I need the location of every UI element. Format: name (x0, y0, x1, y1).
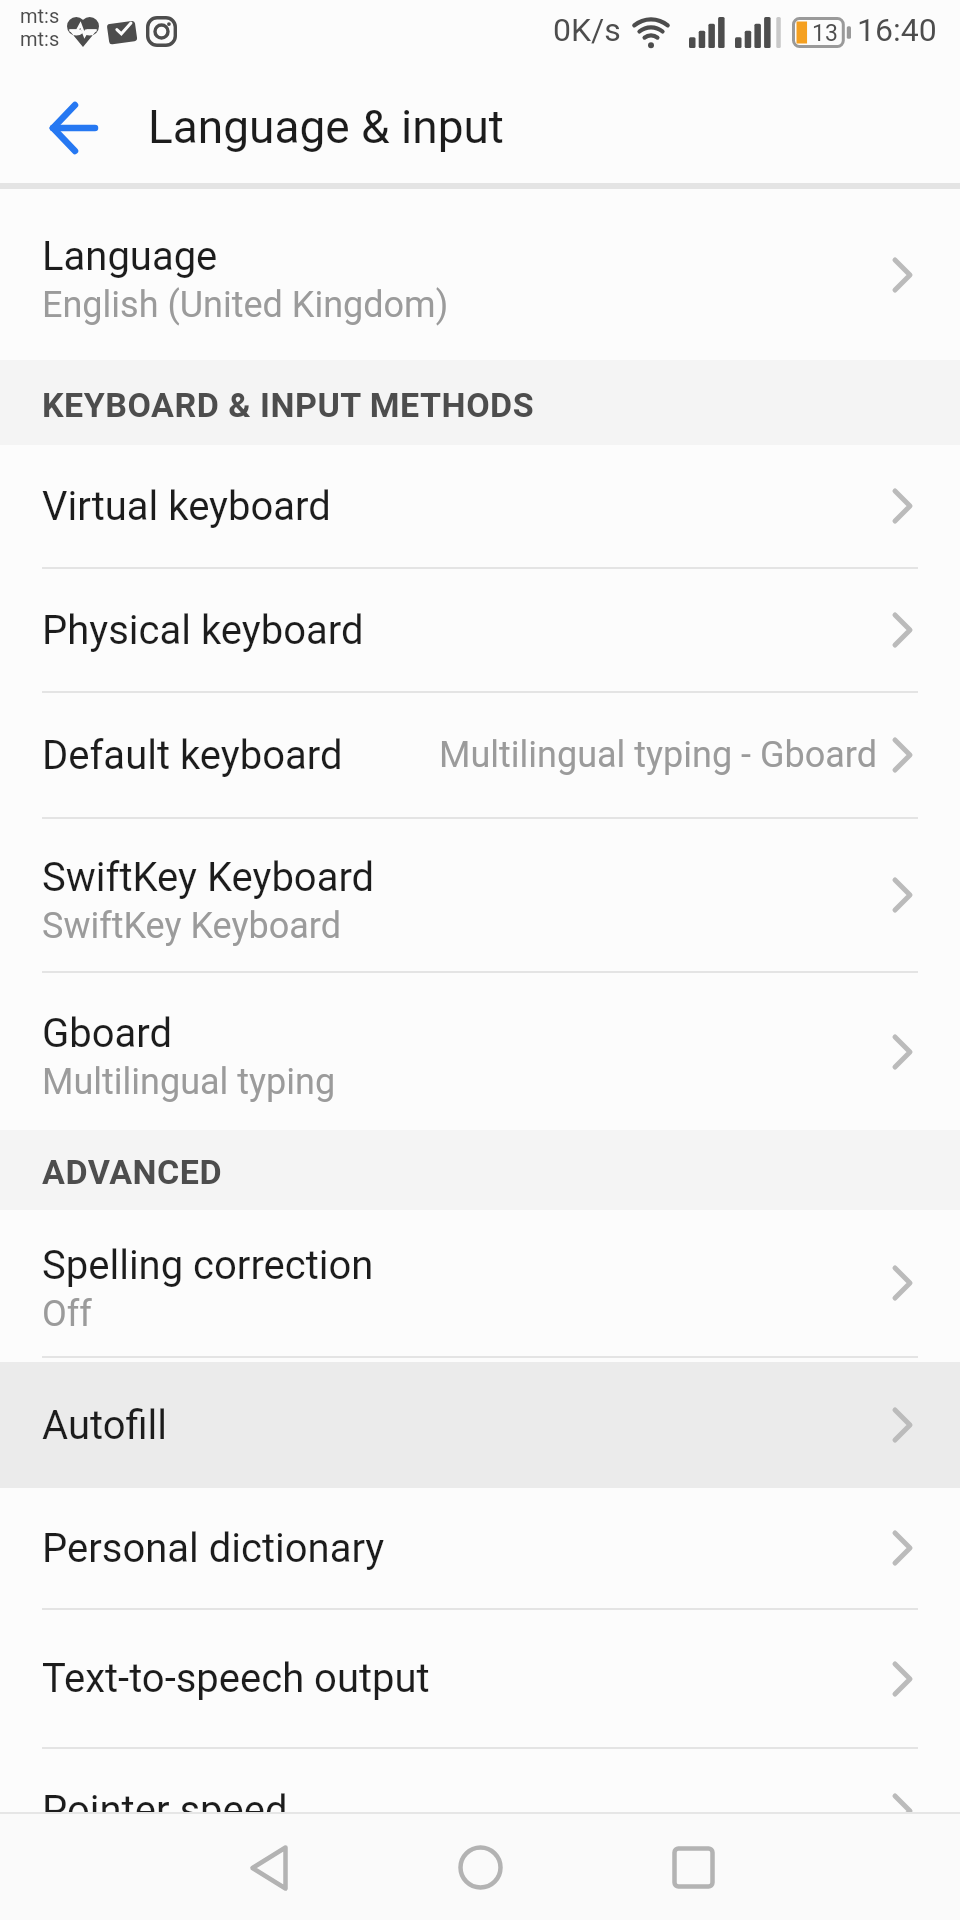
staticText: Text-to-speech output (42, 1655, 430, 1702)
staticText: mt:s (20, 27, 60, 50)
staticText: 16:40 (857, 11, 937, 49)
staticText: English (United Kingdom) (42, 284, 449, 326)
staticText: Virtual keyboard (42, 483, 331, 530)
staticText: 0K/s (553, 11, 621, 49)
button[interactable] (458, 1845, 503, 1890)
staticText: Spelling correction (42, 1242, 374, 1289)
staticText: Autofill (42, 1402, 168, 1449)
button[interactable]: Spelling correction (0, 1210, 960, 1356)
button[interactable] (672, 1846, 715, 1889)
button[interactable] (50, 104, 98, 152)
button[interactable]: Default keyboard (0, 693, 960, 817)
button[interactable]: Text-to-speech output (0, 1610, 960, 1747)
staticText: mt:s (20, 4, 60, 27)
staticText: Multilingual typing (42, 1061, 336, 1103)
button[interactable]: Pointer speed (0, 1749, 960, 1872)
staticText: ADVANCED (42, 1152, 223, 1192)
button[interactable]: Virtual keyboard (0, 445, 960, 567)
staticText: Multilingual typing - Gboard (439, 734, 877, 776)
staticText: Language & input (148, 100, 504, 154)
button[interactable]: Autofill (0, 1362, 960, 1488)
staticText: Pointer speed (42, 1787, 288, 1834)
staticText: Language (42, 233, 218, 280)
staticText: SwiftKey Keyboard (42, 854, 375, 901)
staticText: Physical keyboard (42, 607, 364, 654)
button[interactable] (250, 1845, 288, 1891)
staticText: Gboard (42, 1010, 173, 1057)
button[interactable]: SwiftKey Keyboard (0, 819, 960, 971)
staticText: Off (42, 1293, 92, 1335)
staticText: SwiftKey Keyboard (42, 905, 341, 947)
button[interactable]: Personal dictionary (0, 1488, 960, 1608)
staticText: 13 (812, 20, 838, 47)
button[interactable]: Physical keyboard (0, 569, 960, 691)
staticText: Default keyboard (42, 732, 343, 779)
button[interactable]: Language (0, 189, 960, 360)
staticText: KEYBOARD & INPUT METHODS (42, 385, 535, 425)
staticText: Personal dictionary (42, 1525, 385, 1572)
button[interactable]: Gboard (0, 973, 960, 1130)
